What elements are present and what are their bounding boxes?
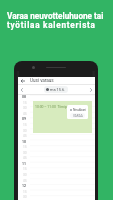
staticText: 30	[23, 129, 27, 133]
staticText: 45	[23, 112, 27, 116]
staticText: 12	[22, 184, 27, 188]
staticText: 10:00 – 11:00 Tiimipalaveri	[35, 105, 77, 109]
staticText: Uusi varaus	[30, 78, 54, 83]
staticText: 30	[23, 195, 27, 199]
staticText: 15	[23, 101, 27, 105]
staticText: 08	[22, 95, 27, 99]
button[interactable]: Next day	[87, 86, 95, 94]
staticText: 15	[23, 145, 27, 149]
button[interactable]: Back	[18, 77, 95, 84]
button[interactable]: Previous day	[18, 86, 26, 94]
staticText: 15	[23, 167, 27, 171]
staticText: Neukkari	[73, 108, 86, 112]
button[interactable]: VARAA	[70, 113, 85, 118]
staticText: 30	[23, 106, 27, 110]
staticText: 30	[23, 173, 27, 177]
staticText: 45	[23, 134, 27, 138]
button[interactable]: Neukkari	[67, 105, 88, 119]
staticText: Varaa neuvotteluhuone tai	[7, 11, 104, 21]
staticText: 45	[23, 179, 27, 183]
staticText: 45	[23, 156, 27, 160]
staticText: 10	[22, 140, 27, 144]
button[interactable]: ma 15.6.	[44, 86, 68, 93]
staticText: 15	[23, 123, 27, 127]
staticText: VARAA	[73, 114, 83, 118]
button[interactable]: 10:00 – 11:00 Tiimipalaveri	[33, 101, 92, 133]
staticText: 30	[23, 151, 27, 155]
staticText: 11	[22, 162, 27, 166]
button[interactable]: Back	[20, 78, 26, 84]
staticText: työtilaa kalenterista	[7, 20, 96, 30]
staticText: ma 15.6.	[50, 87, 66, 92]
staticText: 15	[23, 190, 27, 194]
staticText: 09	[22, 117, 27, 121]
